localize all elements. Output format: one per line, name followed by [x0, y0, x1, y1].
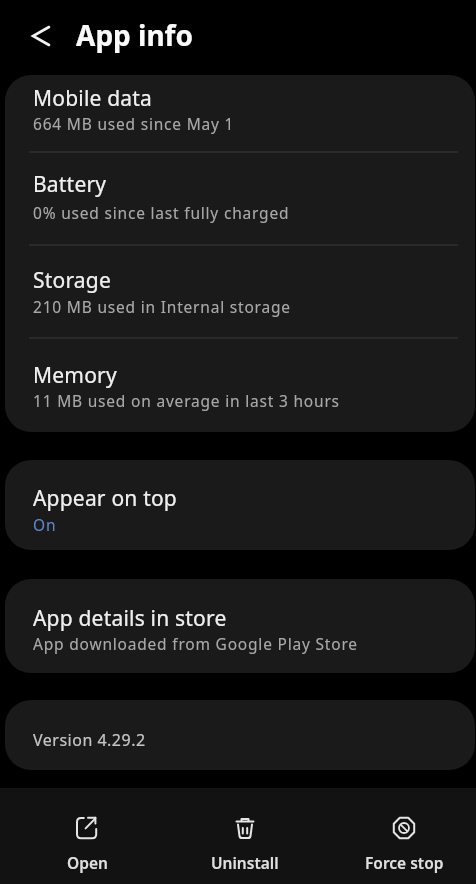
staticText: Appear on top: [33, 484, 177, 513]
button[interactable]: Force stop: [344, 798, 464, 878]
staticText: Battery: [33, 170, 107, 199]
button[interactable]: App details in store: [5, 579, 475, 673]
staticText: Version 4.29.2: [33, 729, 146, 751]
button[interactable]: [5, 246, 475, 338]
button[interactable]: [5, 339, 475, 432]
button[interactable]: [5, 75, 475, 152]
button[interactable]: Appear on top: [5, 460, 475, 550]
staticText: 11 MB used on average in last 3 hours: [33, 390, 340, 411]
staticText: Memory: [33, 361, 117, 390]
staticText: Mobile data: [33, 84, 153, 113]
staticText: Uninstall: [211, 852, 279, 873]
button[interactable]: [20, 15, 62, 57]
button[interactable]: Open: [27, 798, 147, 878]
staticText: 664 MB used since May 1: [33, 113, 235, 134]
staticText: Force stop: [365, 852, 444, 873]
staticText: 0% used since last fully charged: [33, 202, 290, 223]
staticText: On: [33, 514, 57, 535]
staticText: App details in store: [33, 604, 227, 633]
staticText: App downloaded from Google Play Store: [33, 633, 358, 654]
staticText: 210 MB used in Internal storage: [33, 296, 291, 317]
staticText: Open: [67, 852, 108, 873]
button[interactable]: [5, 153, 475, 245]
staticText: Storage: [33, 266, 112, 295]
button[interactable]: Uninstall: [185, 798, 305, 878]
staticText: App info: [76, 16, 193, 54]
